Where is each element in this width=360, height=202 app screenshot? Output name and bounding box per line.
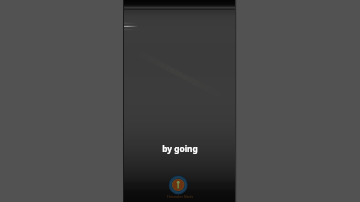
staticText: by going [162,143,198,154]
staticText: Filmmaker Minds [167,195,193,199]
other: Channel logo [168,175,188,202]
button[interactable]: by going [123,0,237,202]
